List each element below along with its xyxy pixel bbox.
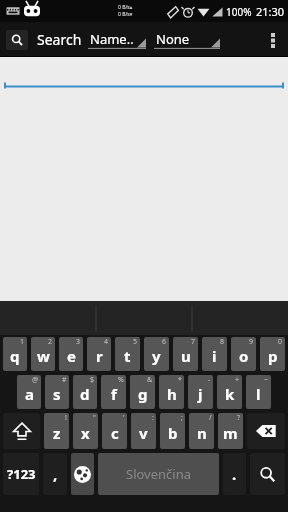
staticText: 6: [162, 337, 167, 347]
staticText: 5: [133, 337, 138, 347]
staticText: w: [37, 346, 50, 366]
staticText: ?123: [7, 465, 36, 483]
button[interactable]: %: [101, 375, 126, 409]
button[interactable]: 3: [59, 337, 83, 371]
button[interactable]: ~: [246, 375, 271, 409]
staticText: d: [80, 384, 90, 404]
staticText: 0 B/s▴: [118, 4, 133, 11]
staticText: 7: [191, 337, 196, 347]
button[interactable]: Search: [250, 453, 285, 495]
button[interactable]: Search: [37, 30, 82, 49]
button[interactable]: None: [154, 26, 220, 54]
button[interactable]: 8: [202, 337, 227, 371]
staticText: u: [181, 346, 191, 366]
button[interactable]: 4: [87, 337, 111, 371]
staticText: @: [32, 375, 39, 385]
button[interactable]: #: [45, 375, 69, 409]
button[interactable]: ;: [160, 413, 185, 449]
staticText: y: [152, 346, 161, 366]
staticText: ?: [237, 413, 241, 423]
staticText: .: [232, 464, 237, 484]
staticText: j: [198, 384, 203, 404]
staticText: 0 B/s▾: [118, 11, 133, 18]
staticText: Slovenčina: [126, 465, 191, 483]
button[interactable]: Backspace: [247, 413, 285, 449]
staticText: 8: [220, 337, 225, 347]
button[interactable]: Slovenčina: [98, 453, 219, 495]
staticText: 4: [104, 337, 109, 347]
staticText: r: [96, 346, 103, 366]
button[interactable]: *: [159, 375, 184, 409]
button[interactable]: More options: [264, 25, 282, 55]
staticText: i: [212, 346, 217, 366]
button[interactable]: /: [189, 413, 214, 449]
staticText: Name..: [90, 30, 134, 48]
staticText: $: [90, 375, 95, 385]
button[interactable]: 0: [260, 337, 285, 371]
button[interactable]: &: [130, 375, 155, 409]
staticText: &: [147, 375, 153, 385]
staticText: 2: [48, 337, 53, 347]
staticText: ": [93, 413, 96, 423]
staticText: None: [156, 30, 190, 48]
staticText: *: [178, 375, 182, 385]
staticText: v: [139, 423, 148, 443]
button[interactable]: Name..: [88, 26, 146, 54]
button[interactable]: Shift: [3, 413, 40, 449]
button[interactable]: ?: [218, 413, 243, 449]
staticText: s: [53, 384, 61, 404]
staticText: 21:30: [256, 4, 285, 19]
staticText: 0: [278, 337, 283, 347]
button[interactable]: [0, 83, 288, 91]
staticText: -: [208, 375, 211, 385]
staticText: ;: [181, 413, 183, 423]
button[interactable]: 6: [144, 337, 169, 371]
button[interactable]: 1: [3, 337, 27, 371]
staticText: c: [111, 423, 119, 443]
staticText: a: [25, 384, 34, 404]
staticText: #: [62, 375, 67, 385]
staticText: z: [53, 423, 61, 443]
button[interactable]: @: [17, 375, 41, 409]
staticText: 9: [249, 337, 254, 347]
button[interactable]: 7: [173, 337, 198, 371]
button[interactable]: +: [217, 375, 242, 409]
button[interactable]: ": [73, 413, 98, 449]
staticText: 100%: [226, 5, 252, 19]
staticText: x: [81, 423, 90, 443]
staticText: :: [152, 413, 154, 423]
staticText: t: [124, 346, 131, 366]
staticText: f: [111, 384, 117, 404]
staticText: k: [225, 384, 235, 404]
staticText: p: [268, 346, 278, 366]
staticText: %: [118, 375, 124, 385]
staticText: b: [168, 423, 178, 443]
staticText: ,: [53, 464, 58, 484]
staticText: e: [67, 346, 76, 366]
button[interactable]: $: [73, 375, 97, 409]
staticText: o: [239, 346, 249, 366]
staticText: ~: [264, 375, 269, 385]
button[interactable]: ?123: [3, 453, 39, 495]
staticText: 1: [20, 337, 25, 347]
button[interactable]: :: [131, 413, 156, 449]
button[interactable]: ,: [43, 453, 67, 495]
staticText: n: [197, 423, 207, 443]
staticText: 3: [76, 337, 81, 347]
button[interactable]: !: [44, 413, 69, 449]
button[interactable]: Change language: [71, 453, 94, 495]
staticText: +: [235, 375, 240, 385]
staticText: l: [256, 384, 261, 404]
staticText: ': [123, 413, 125, 423]
button[interactable]: 2: [31, 337, 55, 371]
staticText: !: [65, 413, 67, 423]
staticText: h: [167, 384, 177, 404]
button[interactable]: ': [102, 413, 127, 449]
staticText: /: [209, 413, 212, 423]
button[interactable]: Search: [6, 30, 28, 50]
button[interactable]: .: [223, 453, 246, 495]
staticText: g: [138, 384, 148, 404]
button[interactable]: 9: [231, 337, 256, 371]
button[interactable]: -: [188, 375, 213, 409]
button[interactable]: 5: [115, 337, 140, 371]
